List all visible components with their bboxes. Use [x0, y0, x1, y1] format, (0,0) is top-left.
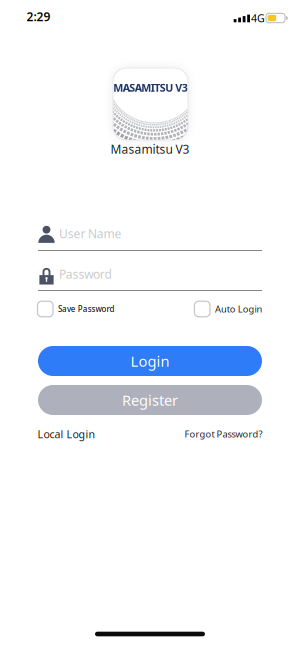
staticText: Forgot Password?	[184, 428, 262, 440]
staticText: Save Password	[58, 304, 114, 314]
button[interactable]: User Name	[38, 221, 262, 245]
staticText: Auto Login	[215, 303, 262, 315]
staticText: MASAMITSU V3	[113, 80, 188, 95]
staticText: Login	[130, 351, 169, 371]
staticText: Masamitsu V3	[110, 141, 189, 157]
staticText: Local Login	[37, 427, 95, 441]
staticText: User Name	[59, 225, 121, 241]
staticText: 4G	[251, 11, 265, 25]
button[interactable]: Auto Login	[194, 301, 262, 317]
staticText: 2:29	[26, 8, 50, 24]
button[interactable]: Login	[38, 346, 262, 376]
staticText: Password	[59, 266, 112, 282]
button[interactable]: Forgot Password?	[184, 428, 262, 440]
button[interactable]: Local Login	[37, 427, 95, 441]
staticText: Register	[122, 390, 178, 410]
button[interactable]: Save Password	[37, 301, 114, 317]
button[interactable]: Password	[38, 261, 262, 287]
button[interactable]: Register	[38, 385, 262, 415]
